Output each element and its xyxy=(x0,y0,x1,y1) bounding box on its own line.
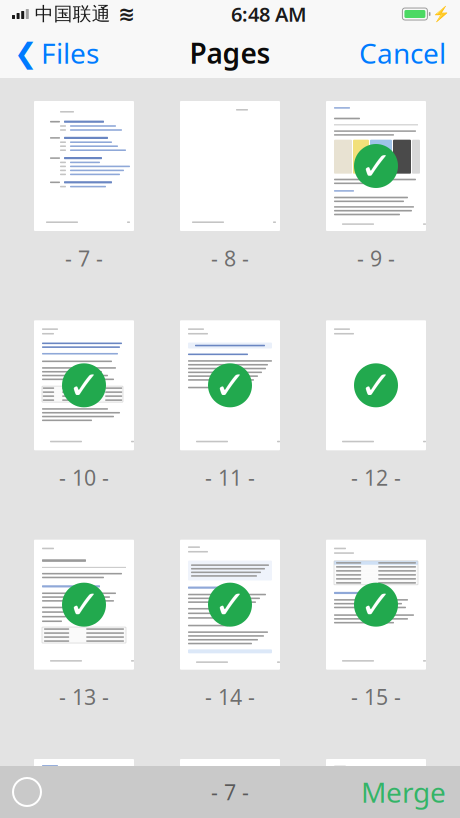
staticText: Files xyxy=(41,34,99,72)
staticText: ✓ xyxy=(360,363,392,407)
staticText: ✓ xyxy=(214,583,246,627)
button[interactable] xyxy=(34,759,134,818)
staticText: - 10 - xyxy=(59,463,109,492)
staticText: ✓ xyxy=(360,144,392,188)
button[interactable]: ✓ xyxy=(34,320,134,492)
button[interactable]: ✓ xyxy=(326,540,426,711)
staticText: Pages xyxy=(189,34,270,72)
staticText: 6:48 AM xyxy=(231,1,307,27)
button[interactable]: Merge xyxy=(361,765,460,818)
staticText: ✓ xyxy=(360,583,392,627)
button[interactable]: ✓ xyxy=(326,320,426,492)
staticText: - 9 - xyxy=(357,244,395,272)
button[interactable]: - 8 - xyxy=(180,101,280,272)
staticText: ✓ xyxy=(68,363,100,407)
staticText: Cancel xyxy=(359,34,446,72)
staticText: - 12 - xyxy=(351,463,401,492)
staticText: ✓ xyxy=(68,583,100,627)
button[interactable]: ✓ xyxy=(34,540,134,711)
staticText: - 11 - xyxy=(205,463,255,492)
button[interactable]: Cancel xyxy=(359,28,460,78)
staticText: - 8 - xyxy=(211,244,249,272)
button[interactable]: - 7 - xyxy=(34,101,134,272)
button[interactable] xyxy=(180,759,280,818)
button[interactable]: ✓ xyxy=(180,540,280,711)
staticText: - 7 - xyxy=(65,244,103,272)
staticText: - 14 - xyxy=(205,683,255,711)
staticText: - 13 - xyxy=(59,683,109,711)
staticText: ≋ xyxy=(118,3,135,25)
button[interactable]: Select all xyxy=(0,769,41,815)
button[interactable] xyxy=(326,759,426,818)
staticText: ❮ xyxy=(14,37,37,69)
staticText: ✓ xyxy=(214,363,246,407)
staticText: ⚡ xyxy=(432,6,450,22)
staticText: - 15 - xyxy=(351,683,401,711)
button[interactable]: ✓ xyxy=(326,101,426,272)
staticText: Merge xyxy=(361,773,446,811)
button[interactable]: ❮ xyxy=(0,28,99,78)
button[interactable]: ✓ xyxy=(180,320,280,492)
staticText: - 7 - xyxy=(211,778,249,806)
staticText: 中国联通 xyxy=(35,2,111,25)
